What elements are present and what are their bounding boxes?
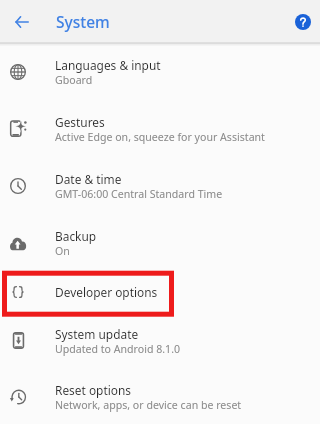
button[interactable]: Help (291, 10, 315, 34)
staticText: System update (55, 326, 139, 342)
staticText: On (55, 244, 70, 258)
staticText: Backup (55, 228, 97, 244)
staticText: GMT-06:00 Central Standard Time (55, 187, 223, 201)
button[interactable]: Reset options (0, 369, 320, 424)
staticText: Developer options (55, 284, 158, 300)
staticText: Updated to Android 8.1.0 (55, 342, 181, 356)
staticText: Network, apps, or device can be reset (55, 398, 242, 412)
button[interactable]: Backup (0, 214, 320, 271)
staticText: Active Edge on, squeeze for your Assista… (55, 130, 265, 144)
button[interactable]: Date & time (0, 157, 320, 214)
button[interactable]: System update (0, 312, 320, 369)
staticText: Gboard (55, 73, 93, 87)
button[interactable]: Languages & input (0, 43, 320, 100)
button[interactable]: Developer options (0, 271, 320, 312)
staticText: Gestures (55, 114, 105, 130)
button[interactable]: Back (8, 8, 36, 36)
staticText: Reset options (55, 382, 131, 398)
staticText: System (56, 11, 110, 32)
staticText: Languages & input (55, 57, 161, 73)
staticText: Date & time (55, 171, 122, 187)
button[interactable]: Gestures (0, 100, 320, 157)
